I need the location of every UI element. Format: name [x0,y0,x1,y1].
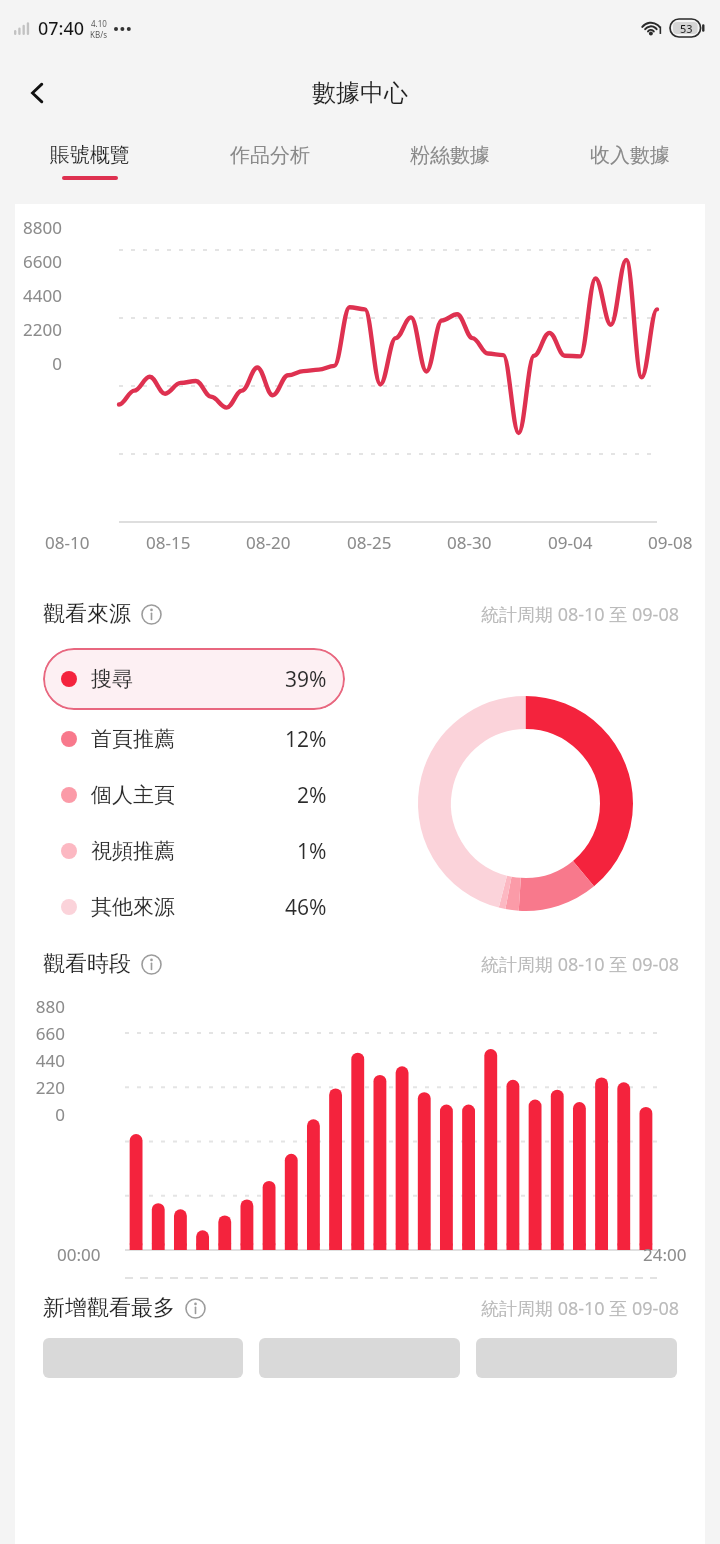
staticText: 8800 [16,216,62,239]
staticText: 粉絲數據 [410,143,490,168]
staticText: 觀看時段 [43,950,131,978]
button[interactable]: 賬號概覽 [0,130,180,192]
staticText: 0 [15,1103,65,1126]
button[interactable]: Back [10,65,66,121]
staticText: KB/s [90,29,107,40]
button[interactable]: Info about 新增觀看最多 [183,1296,207,1320]
staticText: 220 [15,1076,65,1099]
staticText: 07:40 [38,16,85,41]
staticText: 08-15 [146,531,191,554]
staticText: 08-30 [447,531,492,554]
button[interactable]: 視頻推薦 [43,824,345,878]
staticText: 賬號概覽 [50,143,130,168]
staticText: 08-20 [246,531,291,554]
staticText: 首頁推薦 [91,726,175,752]
staticText: 搜尋 [91,666,133,692]
staticText: 2% [297,781,327,810]
staticText: 08-10 [45,531,90,554]
staticText: 880 [15,995,65,1018]
staticText: 1% [297,837,327,866]
staticText: 6600 [16,250,62,273]
staticText: 0 [16,352,62,375]
staticText: 觀看來源 [43,600,131,628]
staticText: 視頻推薦 [91,838,175,864]
staticText: 4.10 [91,18,107,29]
staticText: 收入數據 [590,143,670,168]
staticText: 660 [15,1022,65,1045]
staticText: 統計周期 08-10 至 09-08 [481,1296,679,1321]
staticText: 00:00 [57,1243,101,1266]
staticText: 46% [285,893,327,922]
staticText: 12% [285,725,327,754]
button[interactable]: 個人主頁 [43,768,345,822]
staticText: 統計周期 08-10 至 09-08 [481,952,679,977]
button[interactable]: 首頁推薦 [43,712,345,766]
button[interactable]: 搜尋 [43,648,345,710]
staticText: 2200 [16,318,62,341]
staticText: 4400 [16,284,62,307]
staticText: 數據中心 [312,78,408,108]
staticText: 個人主頁 [91,782,175,808]
staticText: 09-04 [548,531,593,554]
staticText: 440 [15,1049,65,1072]
staticText: 24:00 [643,1243,687,1266]
button[interactable]: 作品分析 [180,130,360,192]
button[interactable]: 收入數據 [540,130,720,192]
staticText: 作品分析 [230,143,310,168]
button[interactable]: Info about 觀看來源 [139,602,163,626]
staticText: 08-25 [347,531,392,554]
staticText: 53 [680,21,693,36]
staticText: 新增觀看最多 [43,1294,175,1322]
button[interactable]: 粉絲數據 [360,130,540,192]
staticText: 其他來源 [91,894,175,920]
button[interactable]: 其他來源 [43,880,345,934]
staticText: 39% [285,665,327,694]
button[interactable]: Info about 觀看時段 [139,952,163,976]
staticText: 09-08 [648,531,693,554]
staticText: 統計周期 08-10 至 09-08 [481,602,679,627]
